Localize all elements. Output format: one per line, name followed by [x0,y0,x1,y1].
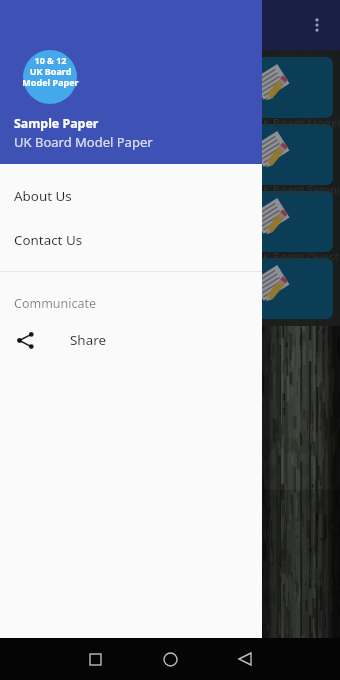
staticText: 10 & 12 UK Board Model Paper [22,54,79,88]
button[interactable] [6,258,333,319]
staticText: About Us [14,187,72,205]
staticText: UK Board Model Paper [14,133,153,151]
button[interactable] [6,191,333,252]
button[interactable]: Recents [76,640,114,678]
staticText: Sample Paper [14,115,99,132]
button[interactable]: Contact Us [0,218,262,262]
staticText: Share [70,331,106,349]
staticText: UK Board Question Paper [255,249,340,264]
button[interactable]: Home [151,640,189,678]
button[interactable]: More options [300,8,334,42]
button[interactable]: Back [226,640,264,678]
button[interactable]: About Us [0,174,262,218]
staticText: Communicate [14,295,97,312]
staticText: UK Board Model Paper [255,115,340,130]
button[interactable]: Share [0,320,262,360]
button[interactable] [6,124,333,185]
staticText: Contact Us [14,231,83,249]
button[interactable] [6,57,333,118]
staticText: UK Board Sample Paper [255,182,340,197]
